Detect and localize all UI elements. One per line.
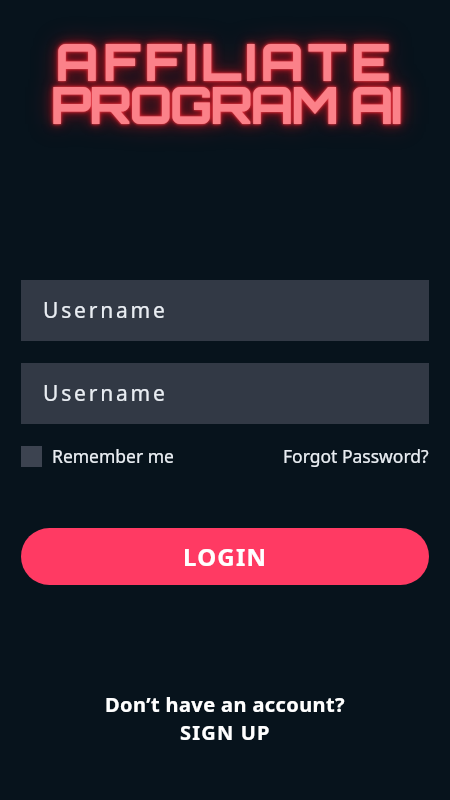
- staticText: Don’t have an account?: [105, 691, 346, 718]
- staticText: AFFILIATE PROGRAM AI: [0, 28, 450, 136]
- button[interactable]: LOGIN: [21, 528, 429, 585]
- staticText: Username: [43, 296, 168, 325]
- button[interactable]: Remember me: [21, 444, 174, 468]
- staticText: AFFILIATE PROGRAM AI: [0, 28, 450, 136]
- button[interactable]: Username: [21, 363, 429, 424]
- staticText: LOGIN: [183, 540, 268, 573]
- staticText: SIGN UP: [180, 719, 271, 746]
- staticText: Remember me: [52, 444, 174, 468]
- staticText: AFFILIATE PROGRAM AI: [0, 28, 450, 136]
- button[interactable]: Don’t have an account?: [0, 691, 450, 746]
- staticText: AFFILIATE PROGRAM AI: [0, 28, 450, 136]
- staticText: AFFILIATE PROGRAM AI: [0, 28, 450, 136]
- button[interactable]: Forgot Password?: [283, 444, 429, 468]
- button[interactable]: Username: [21, 280, 429, 341]
- staticText: Username: [43, 379, 168, 408]
